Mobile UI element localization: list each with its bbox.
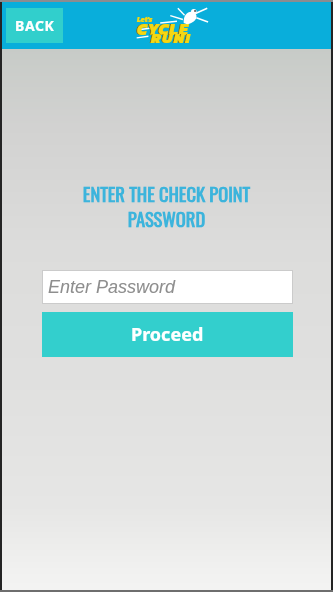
staticText: RUN!	[151, 26, 191, 48]
button[interactable]: Proceed	[42, 312, 293, 357]
staticText: BACK	[15, 16, 55, 35]
button[interactable]: Enter Password	[42, 270, 293, 304]
staticText: ENTER THE CHECK POINT PASSWORD	[2, 180, 331, 232]
button[interactable]: Back	[6, 8, 63, 43]
staticText: Enter Password	[48, 277, 176, 297]
staticText: Let's	[137, 14, 153, 24]
staticText: CYCLE	[136, 17, 188, 41]
staticText: Proceed	[131, 322, 204, 347]
staticText: CYCLE	[137, 17, 189, 41]
other: App logo	[135, 4, 219, 47]
staticText: RUN!	[150, 26, 190, 48]
